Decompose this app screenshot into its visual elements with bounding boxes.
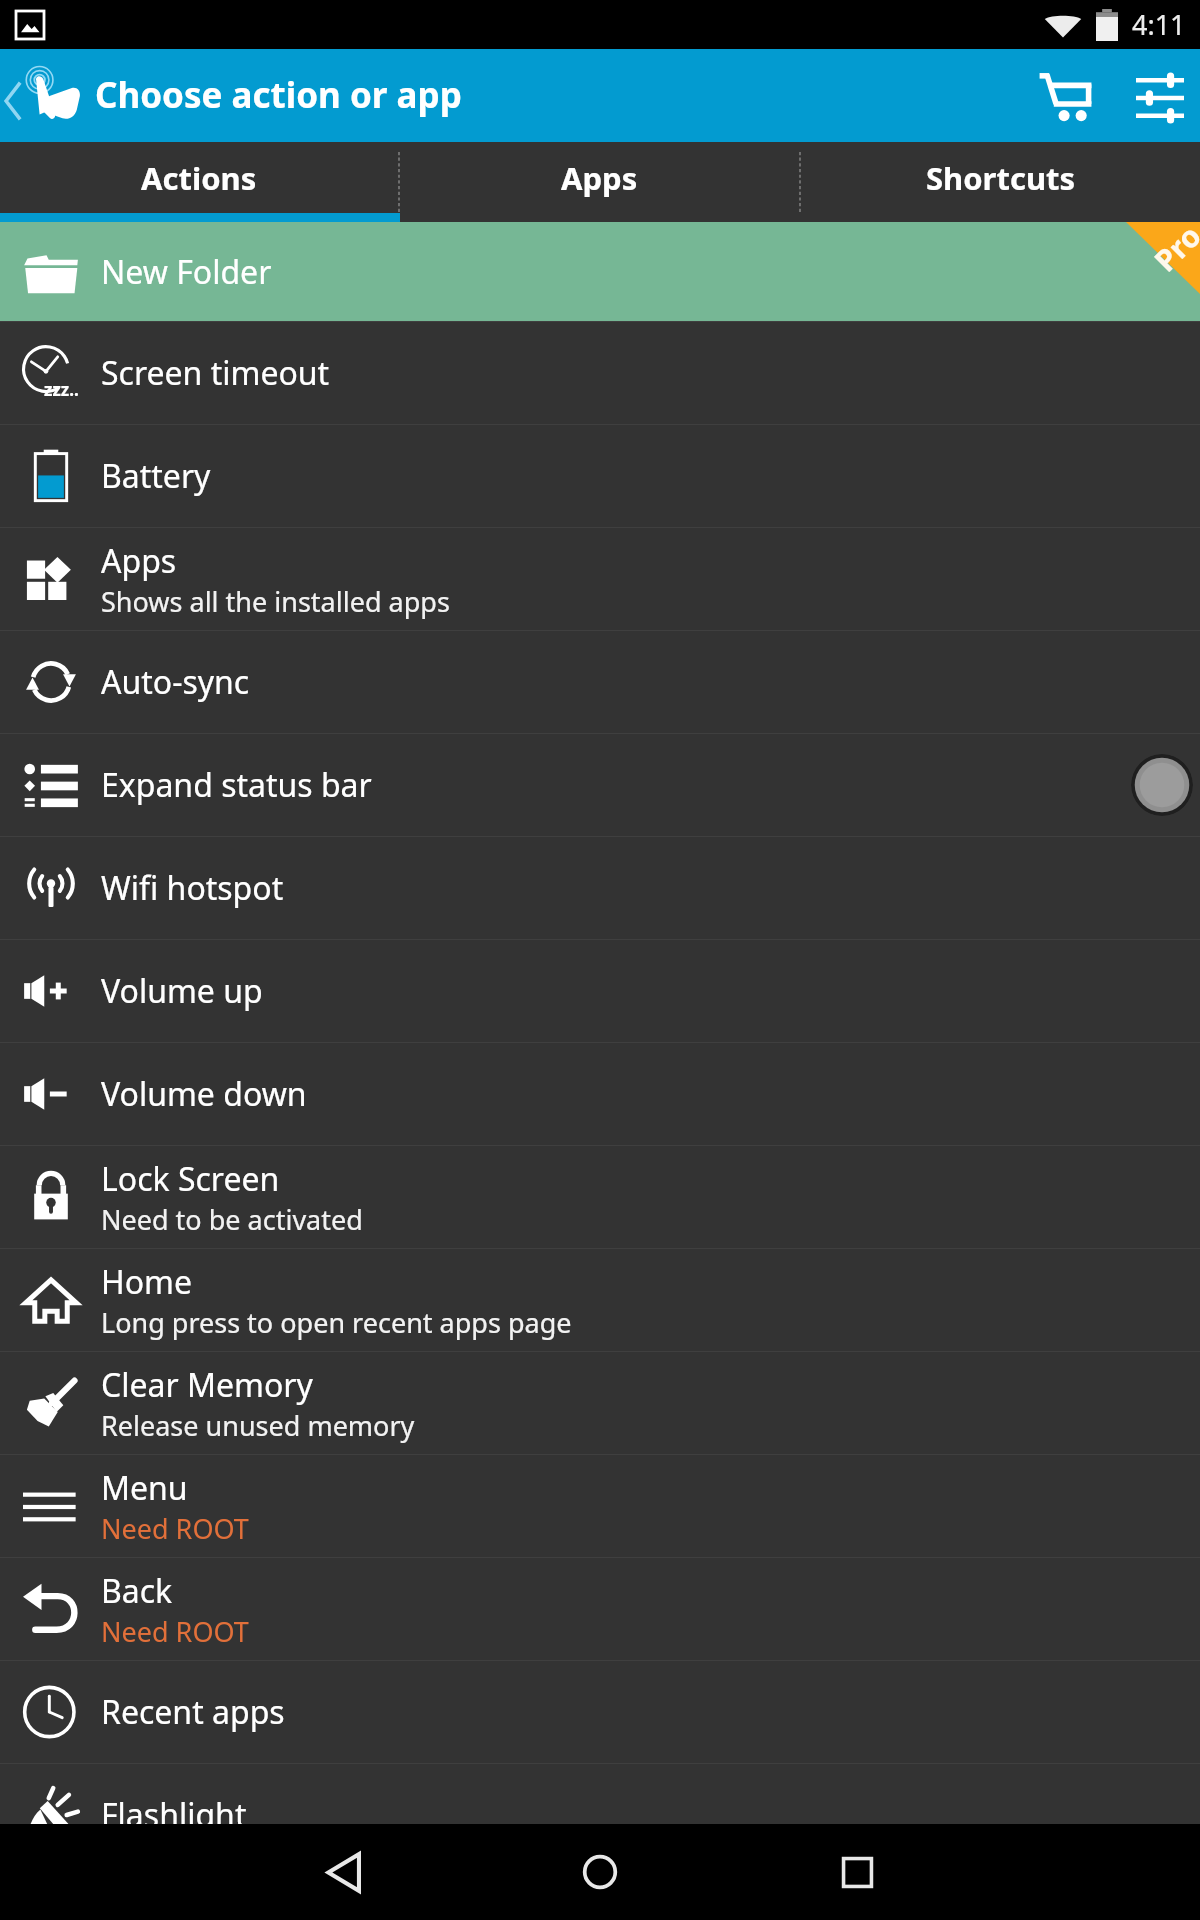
button[interactable]: Back xyxy=(296,1824,392,1920)
staticText: Long press to open recent apps page xyxy=(101,1304,572,1341)
button[interactable]: Home xyxy=(552,1824,648,1920)
staticText: Volume down xyxy=(101,1072,307,1116)
staticText: Shows all the installed apps xyxy=(101,583,450,620)
staticText: Expand status bar xyxy=(101,763,372,807)
staticText: Need ROOT xyxy=(101,1510,249,1547)
button[interactable]: New Folder xyxy=(0,222,1200,321)
staticText: 4:11 xyxy=(1132,6,1186,43)
button[interactable]: Apps xyxy=(0,528,1200,630)
staticText: Shortcuts xyxy=(926,157,1076,199)
staticText: Need to be activated xyxy=(101,1201,363,1238)
staticText: Back xyxy=(101,1569,173,1613)
staticText: Screen timeout xyxy=(101,351,330,395)
button[interactable]: Actions xyxy=(0,142,398,213)
button[interactable]: Flashlight xyxy=(0,1764,1200,1824)
staticText: Home xyxy=(101,1260,193,1304)
staticText: Pro xyxy=(1145,222,1200,280)
button[interactable]: Recent apps xyxy=(0,1661,1200,1763)
staticText: Volume up xyxy=(101,969,263,1013)
button[interactable]: Recent apps xyxy=(809,1824,905,1920)
staticText: Battery xyxy=(101,454,211,498)
button[interactable]: Battery xyxy=(0,425,1200,527)
staticText: Wifi hotspot xyxy=(101,866,284,910)
button[interactable]: Menu xyxy=(0,1455,1200,1557)
staticText: Need ROOT xyxy=(101,1613,249,1650)
button[interactable]: Clear Memory xyxy=(0,1352,1200,1454)
button[interactable]: Auto-sync xyxy=(0,631,1200,733)
button[interactable]: Back xyxy=(0,1558,1200,1660)
staticText: Release unused memory xyxy=(101,1407,415,1444)
staticText: Menu xyxy=(101,1466,188,1510)
staticText: Apps xyxy=(561,157,638,199)
staticText: Actions xyxy=(141,157,257,199)
button[interactable]: Home xyxy=(0,1249,1200,1351)
button[interactable]: Toggle expand status bar xyxy=(1131,754,1193,816)
staticText: Flashlight xyxy=(101,1793,247,1824)
button[interactable]: Volume down xyxy=(0,1043,1200,1145)
button[interactable]: Shop xyxy=(995,49,1095,142)
button[interactable]: Volume up xyxy=(0,940,1200,1042)
staticText: Recent apps xyxy=(101,1690,285,1734)
button[interactable]: zzz.. xyxy=(0,322,1200,424)
staticText: Lock Screen xyxy=(101,1157,280,1201)
staticText: Choose action or app xyxy=(95,71,462,119)
button[interactable]: Expand status bar xyxy=(0,734,1200,836)
button[interactable]: Settings xyxy=(1095,49,1200,142)
button[interactable]: Wifi hotspot xyxy=(0,837,1200,939)
button[interactable]: Shortcuts xyxy=(801,142,1200,213)
staticText: Clear Memory xyxy=(101,1363,313,1407)
staticText: zzz.. xyxy=(44,378,79,401)
staticText: Apps xyxy=(101,539,177,583)
button[interactable]: Apps xyxy=(400,142,799,213)
staticText: Auto-sync xyxy=(101,660,250,704)
staticText: New Folder xyxy=(101,250,272,294)
button[interactable]: Lock Screen xyxy=(0,1146,1200,1248)
